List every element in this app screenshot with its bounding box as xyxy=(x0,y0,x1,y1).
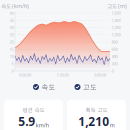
button[interactable]: 고도 xyxy=(74,83,97,91)
staticText: 1:30:00 xyxy=(56,72,68,78)
staticText: 고도 xyxy=(83,83,97,91)
staticText: 3:00:00 xyxy=(94,72,106,78)
staticText: 200 xyxy=(111,61,117,66)
staticText: 30 xyxy=(9,25,13,30)
staticText: 1,000 xyxy=(111,32,120,37)
staticText: 25 xyxy=(9,32,13,37)
staticText: 15 xyxy=(9,47,13,52)
staticText: 1,200 xyxy=(111,25,120,30)
staticText: 속도 xyxy=(41,83,55,91)
staticText: m xyxy=(110,122,115,129)
staticText: 고도 (m) xyxy=(107,2,127,10)
staticText: km/h xyxy=(36,122,49,129)
button[interactable]: 평균 속도 xyxy=(4,100,63,130)
staticText: 0 xyxy=(11,68,13,74)
staticText: 20 xyxy=(9,39,13,45)
staticText: 0:00:00 xyxy=(19,72,31,78)
staticText: 획득 고도 xyxy=(85,107,107,113)
staticText: 평균 속도 xyxy=(22,107,44,113)
staticText: 1,600 xyxy=(111,10,120,16)
staticText: 5.9 xyxy=(18,113,35,129)
staticText: 35 xyxy=(9,18,13,23)
staticText: 600 xyxy=(111,47,117,52)
staticText: 10 xyxy=(9,54,13,59)
staticText: 0 xyxy=(111,68,113,74)
button[interactable]: 획득 고도 xyxy=(67,100,126,130)
staticText: 1,400 xyxy=(111,18,120,23)
button[interactable]: 속도 xyxy=(33,83,55,91)
staticText: 속도 (km/h) xyxy=(1,2,29,10)
staticText: 800 xyxy=(111,39,117,45)
staticText: 1,210 xyxy=(78,113,109,129)
staticText: 400 xyxy=(111,54,117,59)
staticText: 5 xyxy=(11,61,13,66)
staticText: 40 xyxy=(9,10,13,16)
